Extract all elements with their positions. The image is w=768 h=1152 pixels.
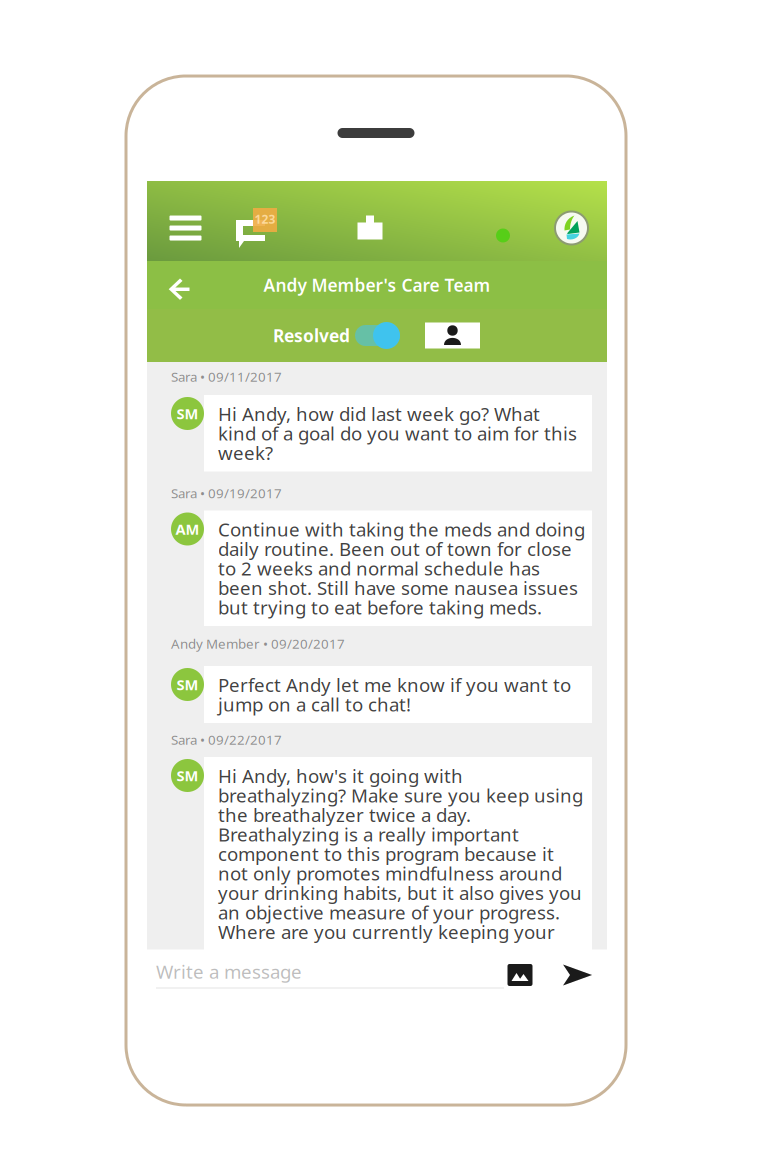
staticText: Andy Member • 09/20/2017 [171, 635, 345, 652]
staticText: daily routine. Been out of town for clos… [218, 536, 572, 561]
staticText: 123 [254, 211, 275, 227]
button[interactable]: Send message [562, 962, 594, 988]
staticText: Write a message [156, 959, 302, 984]
staticText: SM [176, 404, 198, 423]
staticText: jump on a call to chat! [218, 692, 411, 717]
staticText: component to this program because it [218, 841, 554, 866]
staticText: not only promotes mindfulness around [218, 861, 562, 886]
staticText: Andy Member's Care Team [263, 273, 490, 296]
staticText: an objective measure of your progress. [218, 900, 560, 925]
staticText: SM [176, 675, 198, 694]
staticText: Breathalyzing is a really important [218, 822, 519, 847]
staticText: but trying to eat before taking meds. [218, 595, 542, 620]
staticText: Continue with taking the meds and doing [218, 517, 585, 542]
staticText: to 2 weeks and normal schedule has [218, 556, 540, 581]
staticText: Sara • 09/19/2017 [171, 484, 282, 502]
staticText: Sara • 09/11/2017 [171, 368, 282, 385]
staticText: the breathalyzer twice a day. [218, 802, 471, 827]
button[interactable]: Menu [169, 206, 202, 250]
staticText: your drinking habits, but it also gives … [218, 880, 582, 905]
staticText: Hi Andy, how's it going with [218, 763, 463, 788]
staticText: been shot. Still have some nausea issues [218, 575, 578, 600]
staticText: week? [218, 440, 273, 465]
staticText: Resolved [273, 324, 350, 347]
staticText: Hi Andy, how did last week go? What [218, 401, 540, 426]
button[interactable]: Back [158, 257, 200, 312]
staticText: kind of a goal do you want to aim for th… [218, 421, 577, 446]
staticText: breathalyzing? Make sure you keep using [218, 783, 583, 808]
staticText: SM [176, 766, 198, 785]
staticText: Perfect Andy let me know if you want to [218, 672, 571, 697]
button[interactable]: Attach image [507, 962, 533, 988]
button[interactable]: Programs [356, 206, 384, 250]
button[interactable]: Care team members [425, 322, 480, 348]
staticText: AM [175, 519, 199, 539]
button[interactable]: Resolved toggle [273, 318, 400, 352]
button[interactable]: Messages [236, 206, 279, 250]
staticText: Sara • 09/22/2017 [171, 731, 282, 748]
button[interactable]: Account [553, 206, 590, 250]
staticText: Where are you currently keeping your [218, 919, 555, 944]
